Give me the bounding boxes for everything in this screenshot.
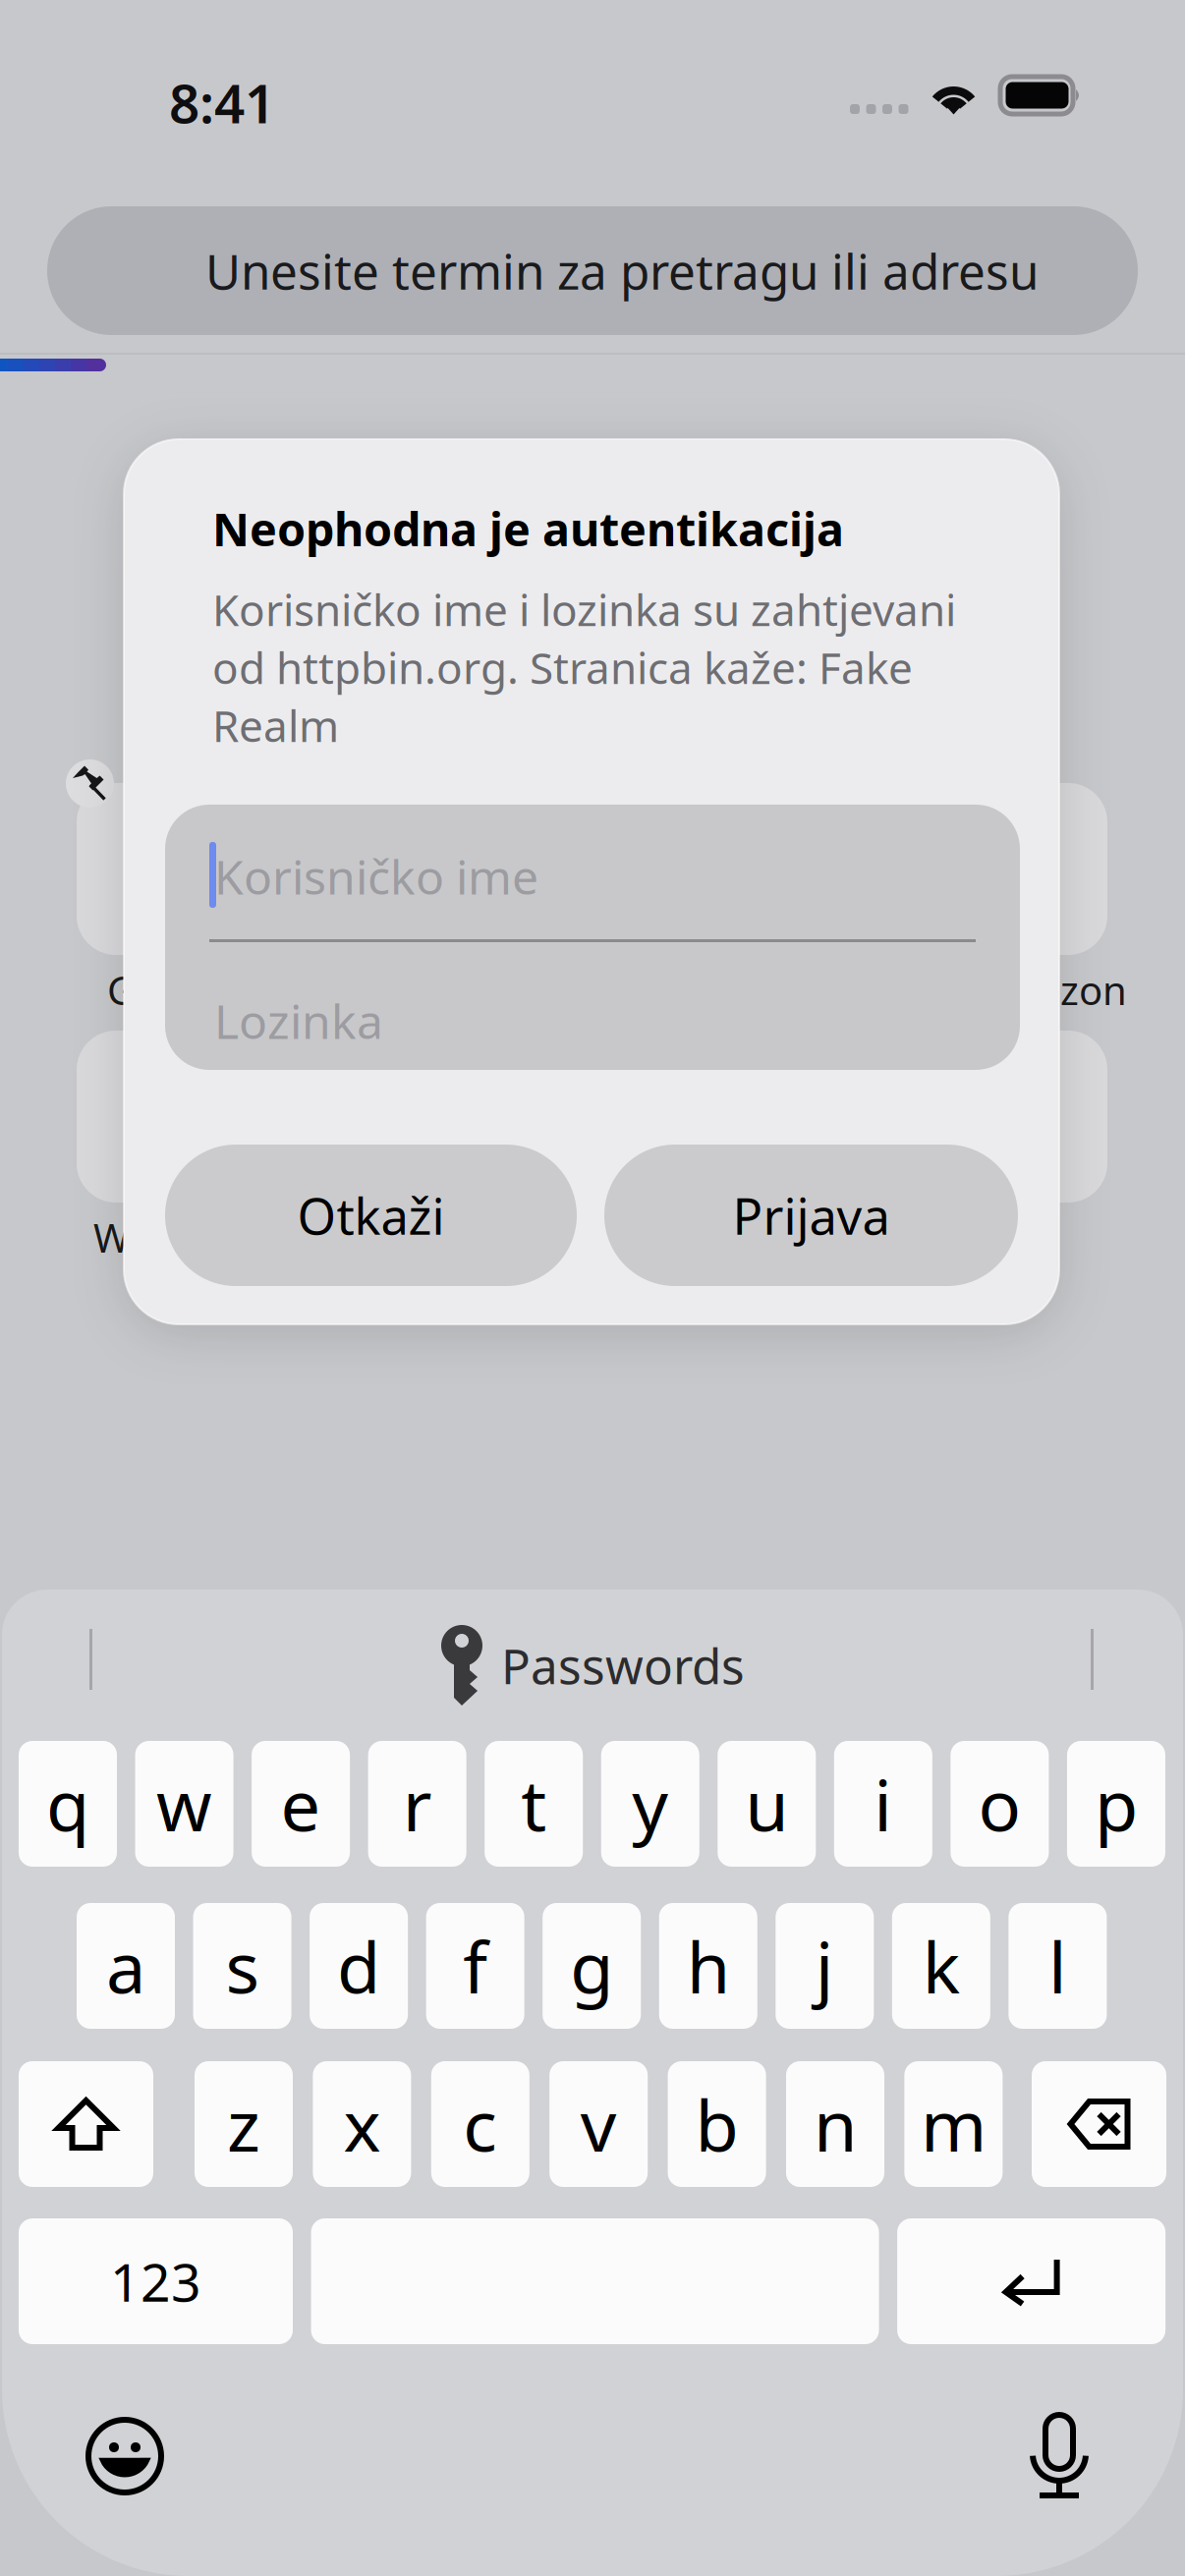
button[interactable]: p	[1067, 1741, 1165, 1867]
staticText: z	[227, 2077, 260, 2171]
staticText: Prijava	[733, 1182, 890, 1248]
staticText: Neophodna je autentikacija	[212, 498, 844, 559]
staticText: v	[580, 2077, 617, 2171]
button[interactable]: Prijava	[604, 1145, 1018, 1286]
staticText: g	[570, 1919, 613, 2013]
staticText: k	[922, 1919, 960, 2013]
staticText: Korisničko ime	[214, 845, 538, 907]
staticText: b	[695, 2077, 739, 2171]
button[interactable]: l	[1009, 1903, 1107, 2029]
staticText: p	[1095, 1757, 1138, 1851]
button[interactable]: Dictation	[1032, 2415, 1087, 2499]
staticText: Amazon	[977, 964, 1127, 1016]
button[interactable]: t	[485, 1741, 583, 1867]
button[interactable]: a	[77, 1903, 175, 2029]
staticText: q	[46, 1757, 89, 1851]
button[interactable]: b	[668, 2061, 766, 2187]
staticText: n	[814, 2077, 857, 2171]
button[interactable]: z	[195, 2061, 293, 2187]
staticText: x	[343, 2077, 381, 2171]
staticText: od httpbin.org. Stranica kaže: Fake	[212, 639, 913, 696]
staticText: t	[521, 1757, 547, 1851]
staticText: r	[402, 1757, 432, 1851]
button[interactable]: y	[601, 1741, 699, 1867]
button[interactable]	[311, 2218, 879, 2344]
staticText: w	[156, 1757, 212, 1851]
button[interactable]: Google	[77, 783, 249, 955]
button[interactable]: g	[543, 1903, 641, 2029]
staticText: Korisničko ime i lozinka su zahtjevani	[212, 581, 956, 638]
staticText: j	[815, 1919, 834, 2013]
staticText: Wikipedia	[93, 1211, 273, 1264]
button[interactable]: h	[659, 1903, 757, 2029]
button[interactable]: k	[892, 1903, 990, 2029]
button[interactable]: Wikipedia	[77, 1031, 249, 1203]
button[interactable]: m	[904, 2061, 1003, 2187]
staticText: u	[745, 1757, 788, 1851]
staticText: e	[281, 1757, 321, 1851]
button[interactable]: s	[193, 1903, 291, 2029]
staticText: m	[921, 2077, 986, 2171]
button[interactable]: x	[313, 2061, 411, 2187]
button[interactable]: q	[19, 1741, 117, 1867]
staticText: s	[226, 1919, 259, 2013]
button[interactable]: v	[549, 2061, 648, 2187]
button[interactable]: n	[786, 2061, 884, 2187]
staticText: a	[106, 1919, 145, 2013]
staticText: Realm	[212, 697, 339, 754]
button[interactable]: c	[431, 2061, 529, 2187]
staticText: y	[632, 1757, 668, 1851]
staticText: c	[463, 2077, 497, 2171]
button[interactable]: j	[776, 1903, 874, 2029]
button[interactable]: Amazon	[935, 783, 1107, 955]
button[interactable]: w	[135, 1741, 233, 1867]
staticText: Google	[107, 964, 240, 1016]
button[interactable]: o	[951, 1741, 1049, 1867]
staticText: Unesite termin za pretragu ili adresu	[205, 238, 1039, 303]
button[interactable]: f	[426, 1903, 524, 2029]
staticText: Lozinka	[214, 989, 383, 1052]
staticText: o	[978, 1757, 1021, 1851]
button[interactable]: 123	[19, 2218, 293, 2344]
staticText: d	[337, 1919, 380, 2013]
staticText: i	[874, 1757, 892, 1851]
staticText: f	[463, 1919, 487, 2013]
staticText: 8:41	[169, 67, 275, 138]
staticText: Passwords	[501, 1633, 745, 1697]
button[interactable]: e	[252, 1741, 350, 1867]
staticText: 123	[110, 2246, 201, 2316]
staticText: l	[1048, 1919, 1067, 2013]
button[interactable]: r	[368, 1741, 466, 1867]
button[interactable]: i	[834, 1741, 932, 1867]
button[interactable]: Delete	[1032, 2061, 1166, 2187]
button[interactable]: Emoji	[85, 2417, 164, 2495]
button[interactable]: Favourite	[935, 1031, 1107, 1203]
button[interactable]: Shift	[19, 2061, 153, 2187]
staticText: Otkaži	[297, 1182, 445, 1248]
button[interactable]: d	[310, 1903, 408, 2029]
staticText: h	[687, 1919, 730, 2013]
button[interactable]: Unesite termin za pretragu ili adresu	[47, 206, 1138, 335]
button[interactable]: Otkaži	[165, 1145, 577, 1286]
button[interactable]: u	[718, 1741, 816, 1867]
button[interactable]: Return	[897, 2218, 1165, 2344]
